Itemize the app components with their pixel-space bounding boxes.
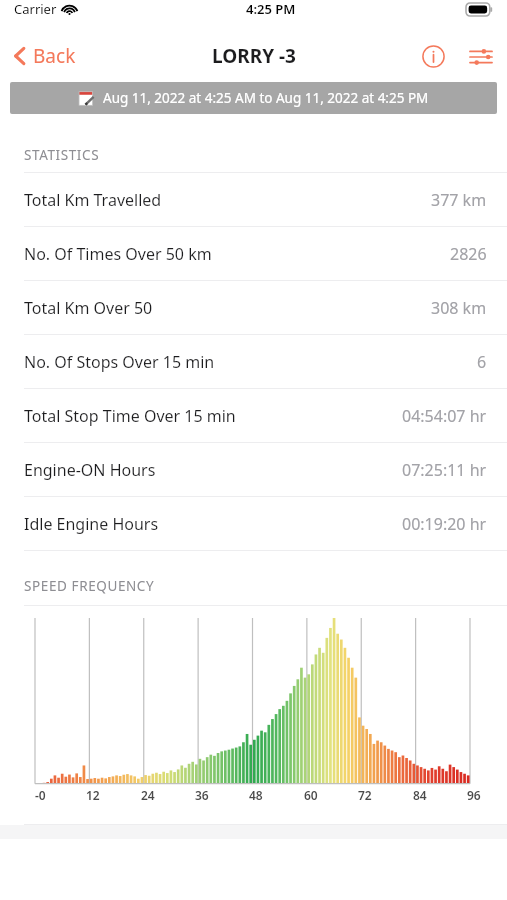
staticText: Idle Engine Hours	[24, 513, 159, 535]
button[interactable]: Total Km Travelled	[0, 173, 507, 226]
staticText: 72	[358, 787, 372, 803]
staticText: Total Stop Time Over 15 min	[24, 405, 236, 427]
staticText: STATISTICS	[24, 146, 100, 164]
staticText: 2826	[450, 243, 487, 265]
staticText: 12	[86, 787, 100, 803]
staticText: 04:54:07 hr	[402, 405, 487, 427]
button[interactable]: No. Of Times Over 50 km	[0, 227, 507, 280]
staticText: LORRY -3	[212, 43, 296, 69]
button[interactable]: Total Stop Time Over 15 min	[0, 389, 507, 442]
staticText: 308 km	[431, 297, 487, 319]
staticText: 36	[195, 787, 209, 803]
staticText: 84	[413, 787, 427, 803]
button[interactable]: Engine-ON Hours	[0, 443, 507, 496]
staticText: SPEED FREQUENCY	[24, 577, 155, 595]
staticText: Back	[33, 43, 76, 69]
staticText: 96	[467, 787, 481, 803]
staticText: Aug 11, 2022 at 4:25 AM to Aug 11, 2022 …	[103, 89, 429, 107]
staticText: 48	[249, 787, 263, 803]
staticText: 24	[141, 787, 155, 803]
button[interactable]: Filter settings	[461, 39, 507, 75]
button[interactable]: Idle Engine Hours	[0, 497, 507, 550]
staticText: 377 km	[431, 189, 487, 211]
button[interactable]: Aug 11, 2022 at 4:25 AM to Aug 11, 2022 …	[10, 82, 497, 114]
staticText: 6	[477, 351, 487, 373]
staticText: 4:25 PM	[246, 0, 296, 18]
staticText: No. Of Stops Over 15 min	[24, 351, 215, 373]
staticText: 60	[304, 787, 318, 803]
staticText: Total Km Over 50	[24, 297, 153, 319]
button[interactable]: Info	[414, 37, 453, 76]
staticText: Engine-ON Hours	[24, 459, 156, 481]
staticText: No. Of Times Over 50 km	[24, 243, 212, 265]
staticText: 00:19:20 hr	[402, 513, 487, 535]
staticText: -0	[35, 787, 46, 803]
staticText: 07:25:11 hr	[402, 459, 487, 481]
button[interactable]: Back	[0, 37, 86, 75]
button[interactable]: Total Km Over 50	[0, 281, 507, 334]
staticText: Total Km Travelled	[24, 189, 162, 211]
staticText: Carrier	[14, 0, 57, 18]
button[interactable]: No. Of Stops Over 15 min	[0, 335, 507, 388]
